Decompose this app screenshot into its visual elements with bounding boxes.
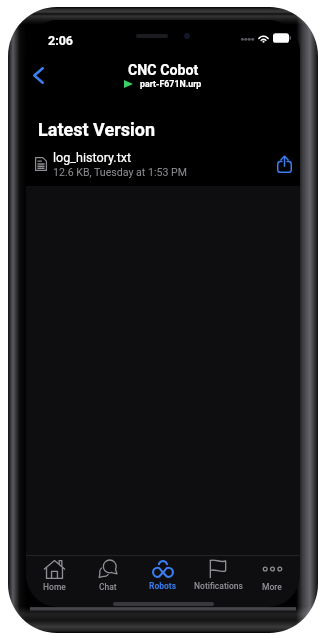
- staticText: part-F671N.urp: [140, 79, 202, 89]
- staticText: log_history.txt: [53, 150, 132, 165]
- staticText: Notifications: [194, 581, 243, 591]
- staticText: Chat: [99, 582, 117, 592]
- button[interactable]: log_history.txt: [26, 146, 300, 182]
- button[interactable]: Robots: [136, 560, 190, 591]
- button[interactable]: Home: [27, 559, 81, 592]
- button[interactable]: Chat: [81, 558, 135, 592]
- button[interactable]: Notifications: [191, 559, 245, 591]
- staticText: Home: [43, 582, 66, 592]
- button[interactable]: Back: [26, 60, 50, 90]
- staticText: 2:06: [48, 33, 74, 48]
- staticText: More: [262, 582, 282, 592]
- staticText: 12.6 KB, Tuesday at 1:53 PM: [53, 166, 187, 178]
- button[interactable]: More: [245, 559, 299, 592]
- staticText: Latest Version: [38, 119, 156, 140]
- button[interactable]: Share: [272, 152, 296, 176]
- staticText: CNC Cobot: [128, 62, 199, 79]
- staticText: Robots: [149, 581, 177, 591]
